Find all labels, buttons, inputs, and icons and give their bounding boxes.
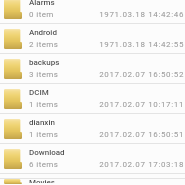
staticText: Alarms xyxy=(29,0,55,7)
staticText: 2 items xyxy=(29,40,59,49)
button[interactable]: dianxin xyxy=(0,114,185,144)
staticText: 1971.03.18 14:42:55 xyxy=(0,40,184,49)
staticText: 6 items xyxy=(29,160,59,169)
staticText: 1 items xyxy=(29,130,59,139)
staticText: backups xyxy=(29,58,60,67)
staticText: dianxin xyxy=(29,118,55,127)
staticText: 2017.02.07 16:50:51 xyxy=(0,130,184,139)
staticText: Download xyxy=(29,148,65,157)
staticText: DCIM xyxy=(29,88,49,97)
staticText: 2017.02.07 16:50:52 xyxy=(0,70,184,79)
staticText: 3 items xyxy=(29,70,59,79)
button[interactable]: Android xyxy=(0,24,185,54)
button[interactable]: Movies xyxy=(0,174,185,179)
staticText: 2017.02.07 10:17:11 xyxy=(0,100,184,109)
button[interactable]: Alarms xyxy=(0,0,185,24)
staticText: Movies xyxy=(29,178,55,183)
button[interactable]: Download xyxy=(0,144,185,174)
staticText: Android xyxy=(29,28,57,37)
staticText: 1971.03.18 14:42:46 xyxy=(0,10,184,19)
staticText: 2017.02.07 17:03:18 xyxy=(0,160,184,169)
staticText: 1 items xyxy=(29,100,59,109)
button[interactable]: backups xyxy=(0,54,185,84)
staticText: 0 item xyxy=(29,10,54,19)
button[interactable]: DCIM xyxy=(0,84,185,114)
